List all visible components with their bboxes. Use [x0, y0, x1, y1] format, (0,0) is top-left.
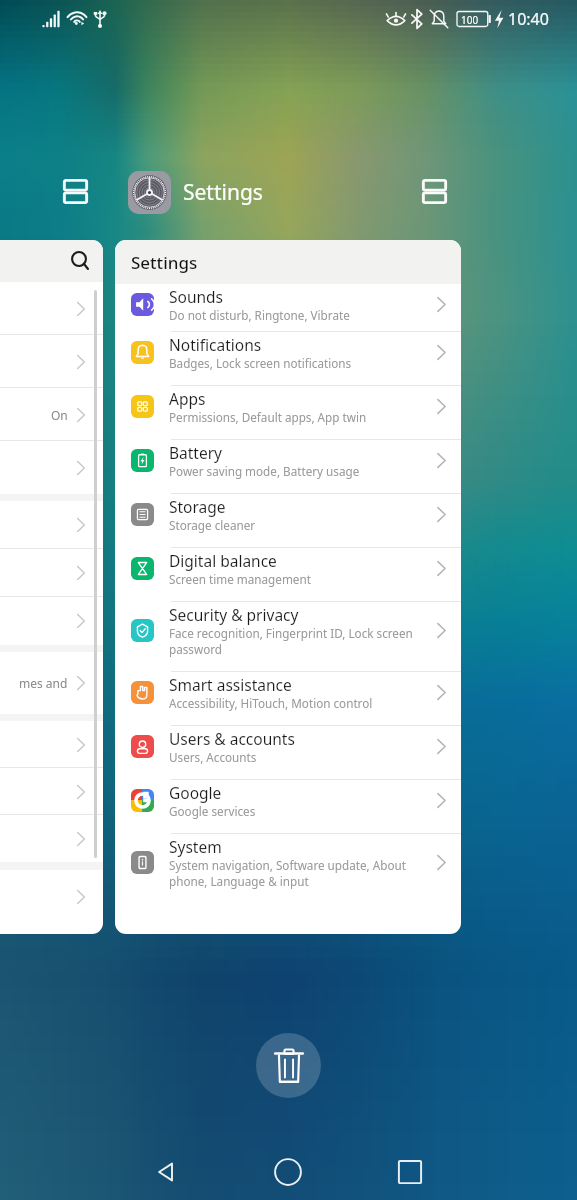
button[interactable]: Users & accounts: [115, 726, 461, 780]
staticText: Power saving mode, Battery usage: [169, 463, 360, 479]
button[interactable]: On: [0, 240, 103, 934]
button[interactable]: Clear all: [256, 1033, 321, 1098]
staticText: Storage cleaner: [169, 517, 256, 533]
staticText: Smart assistance: [169, 674, 292, 695]
button[interactable]: Security & privacy: [115, 602, 461, 672]
staticText: Permissions, Default apps, App twin: [169, 409, 367, 425]
staticText: Screen time management: [169, 571, 311, 587]
staticText: Settings: [183, 178, 263, 207]
staticText: Do not disturb, Ringtone, Vibrate: [169, 307, 350, 323]
staticText: On: [51, 407, 68, 423]
staticText: Digital balance: [169, 550, 277, 571]
button[interactable]: Battery: [115, 440, 461, 494]
staticText: Face recognition, Fingerprint ID, Lock s…: [169, 625, 428, 657]
button[interactable]: Back: [110, 1144, 222, 1200]
button[interactable]: System: [115, 834, 461, 906]
button[interactable]: Settings: [115, 240, 461, 934]
button[interactable]: Notifications: [115, 332, 461, 386]
staticText: Security & privacy: [169, 604, 299, 625]
staticText: Sounds: [169, 286, 224, 307]
button[interactable]: Recents: [354, 1144, 466, 1200]
staticText: Storage: [169, 496, 226, 517]
button[interactable]: Apps: [115, 386, 461, 440]
button[interactable]: Settings: [128, 171, 263, 214]
staticText: Notifications: [169, 334, 262, 355]
staticText: Accessibility, HiTouch, Motion control: [169, 695, 373, 711]
staticText: System: [169, 836, 222, 857]
button[interactable]: Home: [232, 1144, 344, 1200]
staticText: mes and: [19, 675, 68, 691]
button[interactable]: Split screen: [51, 167, 100, 216]
button[interactable]: Storage: [115, 494, 461, 548]
button[interactable]: Digital balance: [115, 548, 461, 602]
staticText: 100: [461, 13, 479, 27]
staticText: Google services: [169, 803, 256, 819]
button[interactable]: Split screen: [410, 167, 459, 216]
staticText: Battery: [169, 442, 223, 463]
staticText: Settings: [131, 251, 198, 274]
staticText: Users & accounts: [169, 728, 295, 749]
button[interactable]: Sounds: [115, 284, 461, 332]
staticText: Apps: [169, 388, 206, 409]
button[interactable]: Google: [115, 780, 461, 834]
staticText: Google: [169, 782, 222, 803]
button[interactable]: Smart assistance: [115, 672, 461, 726]
staticText: 10:40: [508, 8, 549, 30]
staticText: Badges, Lock screen notifications: [169, 355, 352, 371]
staticText: Users, Accounts: [169, 749, 257, 765]
staticText: System navigation, Software update, Abou…: [169, 857, 428, 889]
